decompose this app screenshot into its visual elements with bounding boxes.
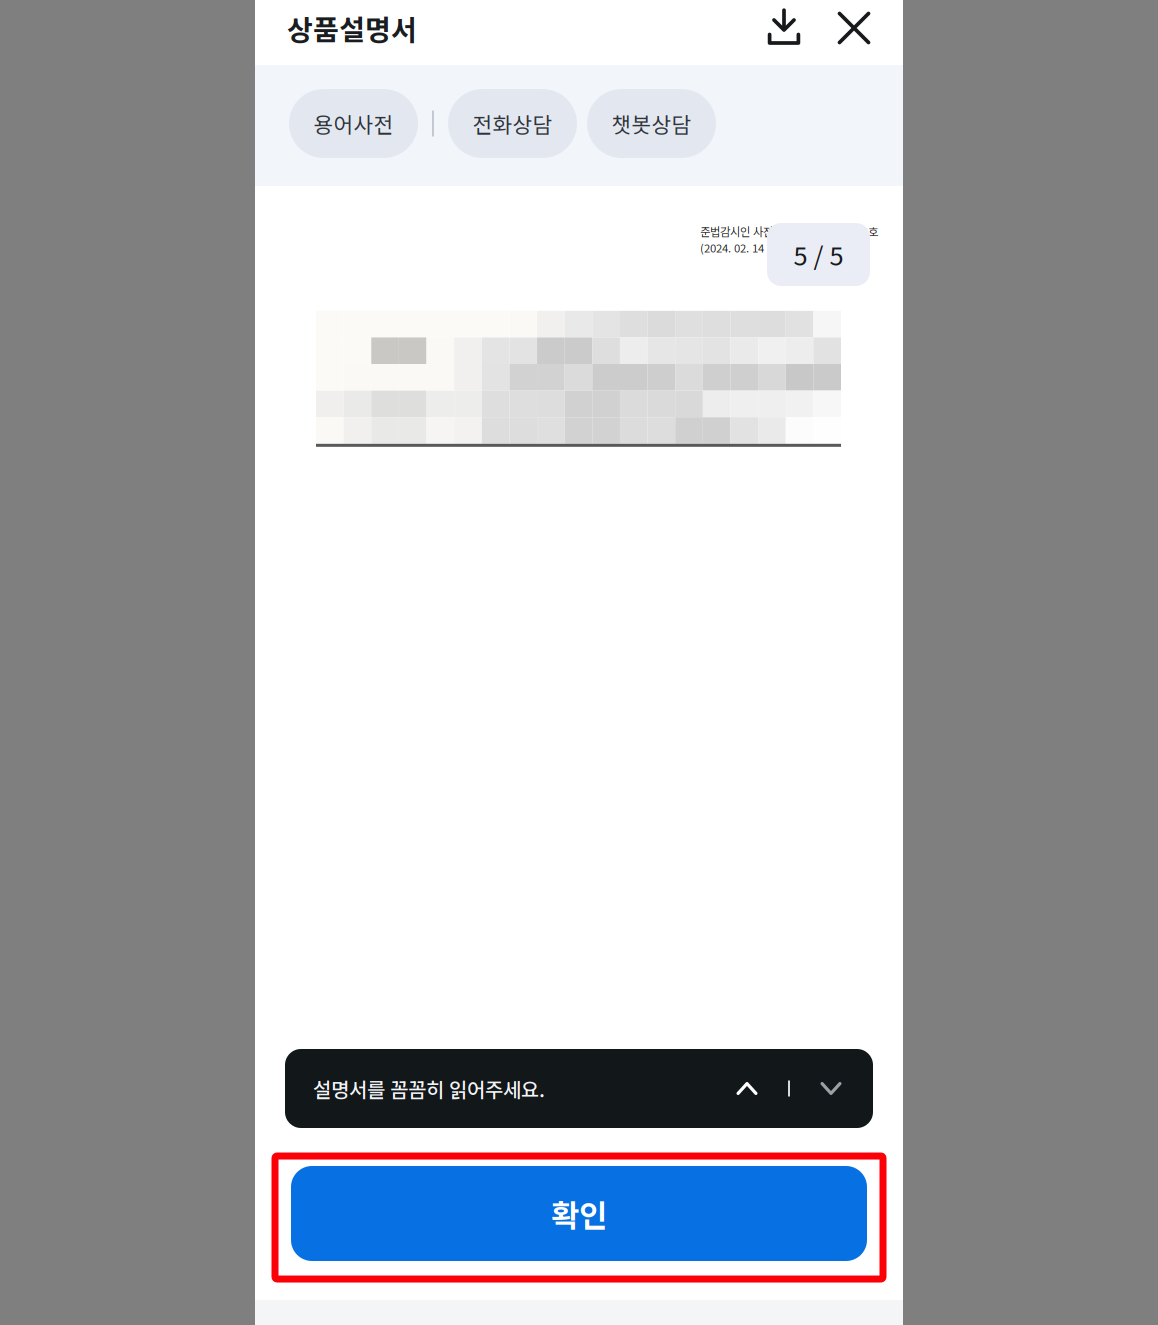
staticText: 챗봇상담	[611, 108, 691, 139]
staticText: 전화상담	[472, 108, 552, 139]
button[interactable]: 이전 페이지	[721, 1061, 773, 1115]
staticText: 설명서를 꼼꼼히 읽어주세요.	[313, 1074, 545, 1103]
staticText: (2024. 02. 14 ~ 2025. 02. 13)	[700, 239, 840, 256]
button[interactable]: 닫기	[828, 5, 880, 51]
staticText: 상품설명서	[287, 8, 417, 48]
staticText: 5 / 5	[793, 236, 843, 273]
staticText: 용어사전	[313, 108, 393, 139]
button[interactable]: 챗봇상담	[587, 89, 716, 158]
button[interactable]: 확인	[291, 1166, 867, 1261]
staticText: 확인	[551, 1191, 607, 1236]
button[interactable]: 전화상담	[448, 89, 577, 158]
staticText: 준법감시인 사전심의필 제2024-0214호	[700, 223, 878, 239]
button[interactable]: 용어사전	[289, 89, 418, 158]
button[interactable]: 다음 페이지	[805, 1061, 857, 1115]
button[interactable]: 다운로드	[758, 5, 810, 51]
